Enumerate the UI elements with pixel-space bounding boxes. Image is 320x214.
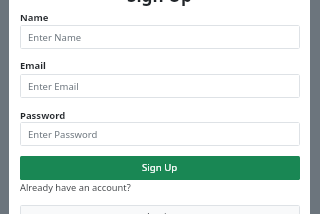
button[interactable]: Login: [20, 205, 300, 214]
staticText: Password: [20, 109, 66, 122]
button[interactable]: Sign Up: [20, 156, 300, 180]
staticText: Already have an account?: [20, 181, 131, 194]
staticText: Name: [20, 11, 49, 24]
staticText: Login: [147, 210, 173, 214]
button[interactable]: Enter Name: [20, 25, 300, 49]
staticText: Sign Up: [127, 0, 192, 7]
staticText: Sign Up: [142, 161, 178, 174]
staticText: Enter Password: [28, 128, 98, 141]
staticText: Enter Email: [28, 80, 79, 93]
staticText: Email: [20, 59, 46, 72]
button[interactable]: Enter Email: [20, 74, 300, 98]
staticText: Enter Name: [28, 31, 82, 44]
button[interactable]: Enter Password: [20, 122, 300, 146]
